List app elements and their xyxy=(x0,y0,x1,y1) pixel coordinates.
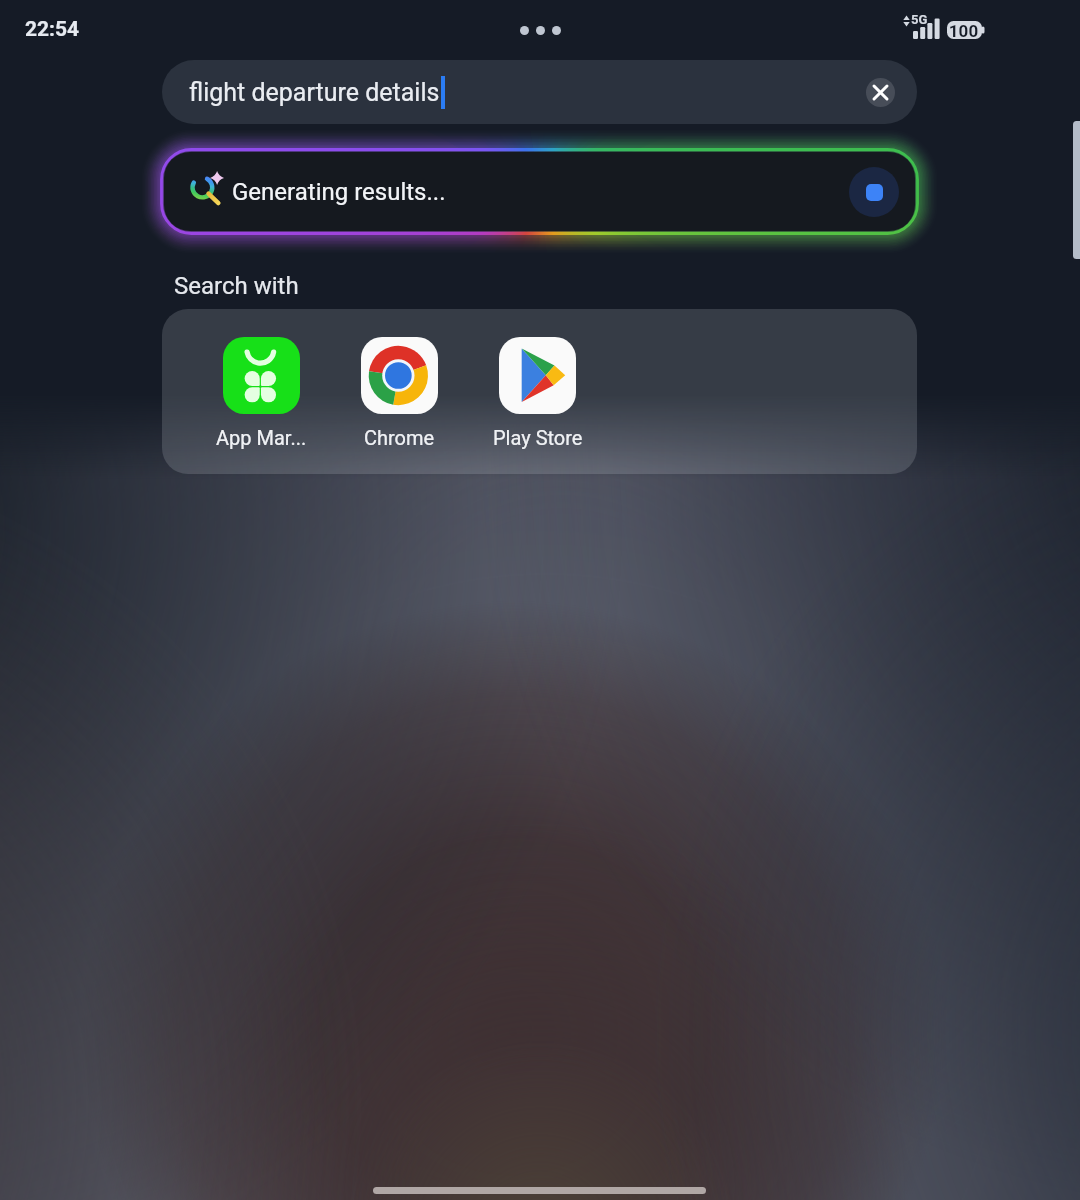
staticText: Generating results... xyxy=(232,178,446,206)
button[interactable]: Play Store xyxy=(472,337,603,449)
staticText: 100 xyxy=(947,21,980,41)
staticText: Play Store xyxy=(493,426,583,449)
button[interactable]: Generating results... xyxy=(164,152,915,231)
staticText: flight departure details xyxy=(189,78,440,107)
button[interactable]: Stop generating xyxy=(849,167,899,217)
button[interactable]: App Mar... xyxy=(196,337,327,449)
staticText: Chrome xyxy=(364,426,435,449)
staticText: 5G xyxy=(911,12,928,27)
button[interactable]: Chrome xyxy=(334,337,465,449)
button[interactable]: flight departure details xyxy=(162,60,917,124)
button[interactable]: Clear query xyxy=(866,78,895,107)
staticText: Search with xyxy=(174,272,299,300)
staticText: 22:54 xyxy=(25,17,80,42)
staticText: App Mar... xyxy=(216,426,307,449)
